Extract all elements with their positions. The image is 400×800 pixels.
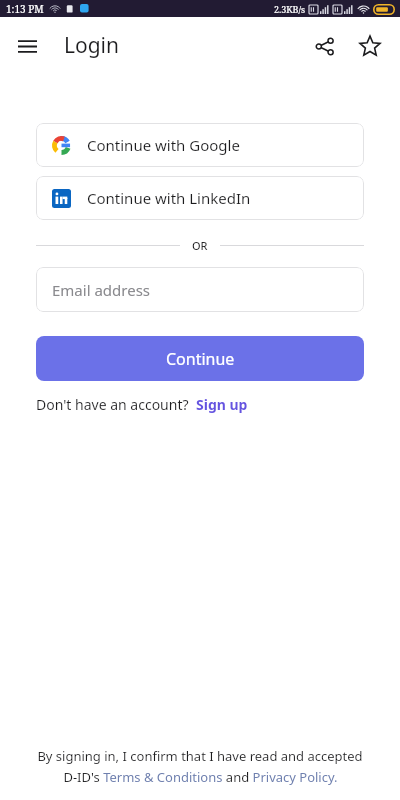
staticText: Don't have an account?	[36, 395, 189, 414]
button[interactable]: Continue with LinkedIn	[36, 176, 364, 220]
staticText: 1:13 PM	[6, 2, 44, 16]
button[interactable]: Email address	[36, 267, 364, 312]
staticText: 2.3KB/s	[274, 3, 306, 15]
button[interactable]: Share	[304, 26, 344, 66]
button[interactable]: Sign up	[196, 395, 248, 414]
staticText: Login	[64, 31, 120, 60]
staticText: Email address	[52, 280, 151, 300]
staticText: By signing in, I confirm that I have rea…	[37, 747, 363, 765]
button[interactable]: Favorite	[350, 26, 390, 66]
staticText: Continue with Google	[87, 135, 240, 155]
staticText: Sign up	[196, 395, 248, 414]
button[interactable]: Menu	[8, 27, 46, 65]
staticText: OR	[192, 238, 208, 253]
staticText: Continue with LinkedIn	[87, 188, 251, 208]
button[interactable]: D-ID's Terms & Conditions and Privacy Po…	[63, 768, 338, 786]
button[interactable]: Continue with Google	[36, 123, 364, 167]
button[interactable]: Continue	[36, 336, 364, 381]
staticText: D-ID's Terms & Conditions and Privacy Po…	[63, 768, 338, 786]
staticText: Continue	[166, 348, 235, 370]
